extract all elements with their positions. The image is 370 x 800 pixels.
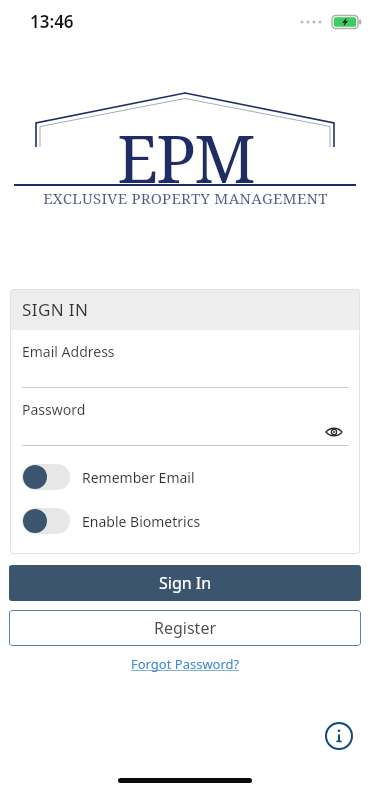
staticText: Sign In [159,572,212,594]
button[interactable]: Remember Email [10,462,360,492]
staticText: EPM [117,112,254,202]
staticText: 13:46 [30,10,74,33]
button[interactable]: Show password [320,419,348,445]
button[interactable]: Forgot Password? [125,653,246,675]
staticText: Remember Email [82,468,195,487]
staticText: Forgot Password? [131,655,240,673]
staticText: SIGN IN [22,298,89,321]
staticText: Password [22,400,86,419]
button[interactable]: Sign In [9,565,361,601]
staticText: Enable Biometrics [82,512,201,531]
staticText: Email Address [22,342,115,361]
button[interactable]: Information [322,719,356,753]
button[interactable]: Register [9,610,361,646]
staticText: Register [154,617,217,639]
staticText: EXCLUSIVE PROPERTY MANAGEMENT [43,188,328,208]
button[interactable]: Enable Biometrics [10,506,360,536]
